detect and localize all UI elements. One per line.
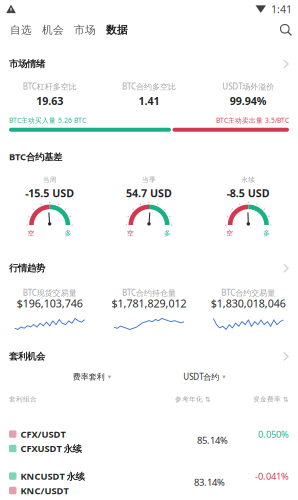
staticText: 0.050% — [258, 428, 289, 440]
staticText: 套利组合 — [9, 395, 37, 403]
staticText: BTC杠杆多空比 — [23, 81, 77, 92]
button[interactable]: BTC合约基差 — [0, 150, 298, 164]
staticText: BTC主动买入量 5.26 BTC — [9, 116, 86, 125]
staticText: 99.94% — [230, 94, 267, 108]
staticText: BTC合约持仓量 — [122, 287, 176, 298]
staticText: -15.5 USD — [25, 186, 74, 200]
staticText: 85.14% — [197, 434, 228, 446]
staticText: BTC合约多空比 — [122, 81, 176, 92]
button[interactable]: 市场情绪 — [0, 57, 298, 71]
staticText: 1.41 — [138, 94, 159, 108]
staticText: KNCUSDT 永续 — [20, 470, 84, 482]
staticText: 市场情绪 — [9, 58, 45, 70]
staticText: 多 — [263, 229, 270, 237]
staticText: 费率套利 — [73, 372, 105, 382]
staticText: 83.14% — [194, 476, 225, 488]
staticText: 数据 — [106, 23, 128, 36]
staticText: BTC合约交易量 — [221, 287, 275, 298]
staticText: 54.7 USD — [126, 186, 172, 200]
button[interactable]: 机会 — [37, 21, 69, 39]
button[interactable]: Search — [279, 23, 293, 37]
staticText: -0.041% — [255, 470, 289, 482]
staticText: 自选 — [10, 23, 32, 36]
staticText: 空 — [226, 229, 233, 237]
staticText: 当周 — [43, 176, 57, 184]
staticText: CFXUSDT 永续 — [20, 442, 81, 455]
staticText: 市场 — [74, 23, 96, 36]
staticText: BTC合约基差 — [9, 150, 62, 163]
staticText: 当季 — [142, 176, 156, 184]
staticText: $1,781,829,012 — [111, 296, 186, 310]
staticText: 行情趋势 — [9, 262, 45, 274]
button[interactable]: KNCUSDT 永续 — [0, 468, 298, 498]
staticText: 资金费率 ⇅ — [253, 395, 289, 403]
staticText: CFX/USDT — [20, 428, 65, 440]
staticText: $1,830,018,046 — [211, 296, 286, 310]
staticText: KNC/USDT — [20, 484, 68, 497]
button[interactable]: 套利机会 — [0, 349, 298, 363]
staticText: BTC主动卖出量 3.5/BTC — [216, 116, 289, 125]
button[interactable]: 市场 — [69, 21, 101, 39]
staticText: 机会 — [42, 23, 64, 36]
staticText: 套利机会 — [9, 351, 45, 362]
staticText: -8.5 USD — [227, 186, 270, 200]
staticText: 参考年化 ⇅ — [175, 395, 211, 403]
button[interactable]: 费率套利 — [73, 372, 111, 382]
staticText: 多 — [65, 229, 72, 237]
button[interactable]: 自选 — [5, 21, 37, 39]
staticText: $196,103,746 — [17, 296, 83, 310]
staticText: USDT场外溢价 — [222, 81, 274, 92]
staticText: BTC现货交易量 — [23, 287, 77, 298]
staticText: ▾ — [108, 373, 111, 381]
button[interactable]: CFX/USDT — [0, 426, 298, 456]
staticText: 19.63 — [36, 94, 63, 108]
staticText: 1:41 — [271, 2, 292, 16]
staticText: USDT合约 — [183, 371, 219, 382]
button[interactable]: USDT合约 — [183, 371, 225, 382]
staticText: 永续 — [241, 176, 255, 184]
staticText: 空 — [28, 229, 35, 237]
staticText: 多 — [164, 229, 171, 237]
staticText: ▾ — [222, 373, 225, 381]
button[interactable]: 行情趋势 — [0, 261, 298, 275]
staticText: 空 — [127, 229, 134, 237]
button[interactable]: 数据 — [101, 21, 133, 39]
